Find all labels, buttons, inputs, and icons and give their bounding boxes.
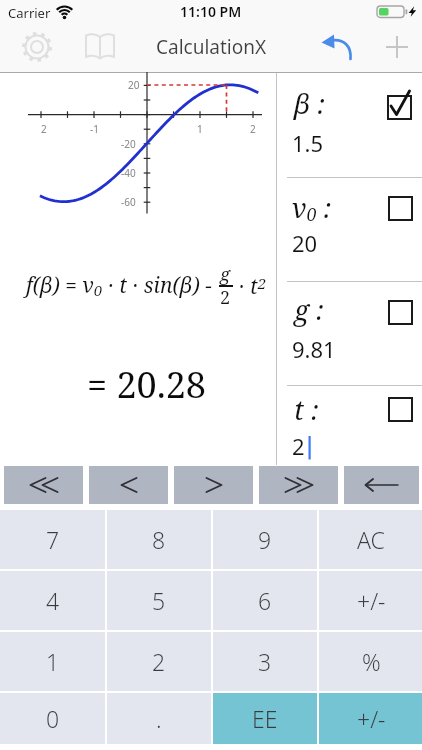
button[interactable] bbox=[388, 196, 413, 221]
staticText: 3 bbox=[258, 646, 272, 677]
staticText: 11:10 PM bbox=[180, 2, 242, 21]
button[interactable] bbox=[318, 33, 354, 61]
staticText: % bbox=[362, 646, 381, 677]
staticText: 2 bbox=[41, 122, 47, 136]
staticText: 9.81 bbox=[292, 334, 336, 364]
button[interactable] bbox=[174, 466, 253, 504]
staticText: g : bbox=[294, 291, 324, 328]
button[interactable] bbox=[388, 300, 413, 325]
button[interactable] bbox=[4, 466, 83, 504]
staticText: g bbox=[220, 262, 231, 287]
button[interactable]: AC bbox=[319, 510, 422, 569]
button[interactable] bbox=[387, 95, 412, 120]
staticText: = 20.28 bbox=[87, 360, 206, 406]
staticText: 8 bbox=[152, 524, 166, 555]
button[interactable]: 1 bbox=[0, 632, 105, 691]
button[interactable]: 6 bbox=[213, 571, 317, 630]
button[interactable]: +/- bbox=[319, 571, 422, 630]
staticText: 1 bbox=[197, 122, 203, 136]
staticText: Carrier bbox=[8, 4, 51, 22]
button[interactable] bbox=[344, 466, 419, 504]
button[interactable]: 7 bbox=[0, 510, 105, 569]
staticText: 0 bbox=[46, 703, 60, 734]
staticText: +/- bbox=[357, 703, 386, 734]
staticText: 2 bbox=[152, 646, 166, 677]
staticText: 9 bbox=[258, 524, 272, 555]
staticText: 2 bbox=[220, 285, 231, 310]
staticText: f(β) = v0 · t · sin(β) − bbox=[26, 271, 218, 301]
staticText: EE bbox=[252, 703, 278, 734]
button[interactable]: 2 bbox=[107, 632, 211, 691]
staticText: 20 bbox=[128, 78, 140, 92]
button[interactable] bbox=[89, 466, 168, 504]
staticText: -1 bbox=[90, 122, 99, 136]
staticText: 4 bbox=[46, 585, 60, 616]
button[interactable]: 9 bbox=[213, 510, 317, 569]
button[interactable]: 5 bbox=[107, 571, 211, 630]
button[interactable]: % bbox=[319, 632, 422, 691]
button[interactable]: . bbox=[107, 693, 211, 744]
staticText: · t2 bbox=[233, 272, 267, 301]
staticText: . bbox=[156, 703, 162, 734]
staticText: β : bbox=[294, 85, 326, 122]
button[interactable]: 0 bbox=[0, 693, 105, 744]
staticText: AC bbox=[357, 524, 385, 555]
staticText: CalculationX bbox=[156, 34, 267, 60]
staticText: -20 bbox=[121, 137, 136, 151]
staticText: 1.5 bbox=[292, 128, 324, 158]
staticText: 2 bbox=[292, 431, 305, 461]
staticText: +/- bbox=[357, 585, 386, 616]
button[interactable]: +/- bbox=[319, 693, 422, 744]
button[interactable]: EE bbox=[213, 693, 317, 744]
staticText: t : bbox=[294, 391, 319, 428]
button[interactable] bbox=[259, 466, 338, 504]
staticText: v0 : bbox=[292, 189, 332, 226]
button[interactable] bbox=[388, 397, 413, 422]
button[interactable] bbox=[20, 30, 54, 64]
staticText: -60 bbox=[121, 195, 136, 209]
button[interactable] bbox=[383, 33, 411, 61]
button[interactable]: 3 bbox=[213, 632, 317, 691]
staticText: 6 bbox=[258, 585, 272, 616]
staticText: 7 bbox=[46, 524, 60, 555]
staticText: 1 bbox=[46, 646, 60, 677]
staticText: 2 bbox=[250, 122, 256, 136]
staticText: -40 bbox=[121, 166, 136, 180]
staticText: 20 bbox=[292, 228, 318, 258]
button[interactable]: 8 bbox=[107, 510, 211, 569]
staticText: 5 bbox=[152, 585, 166, 616]
button[interactable] bbox=[83, 32, 117, 62]
button[interactable]: 4 bbox=[0, 571, 105, 630]
